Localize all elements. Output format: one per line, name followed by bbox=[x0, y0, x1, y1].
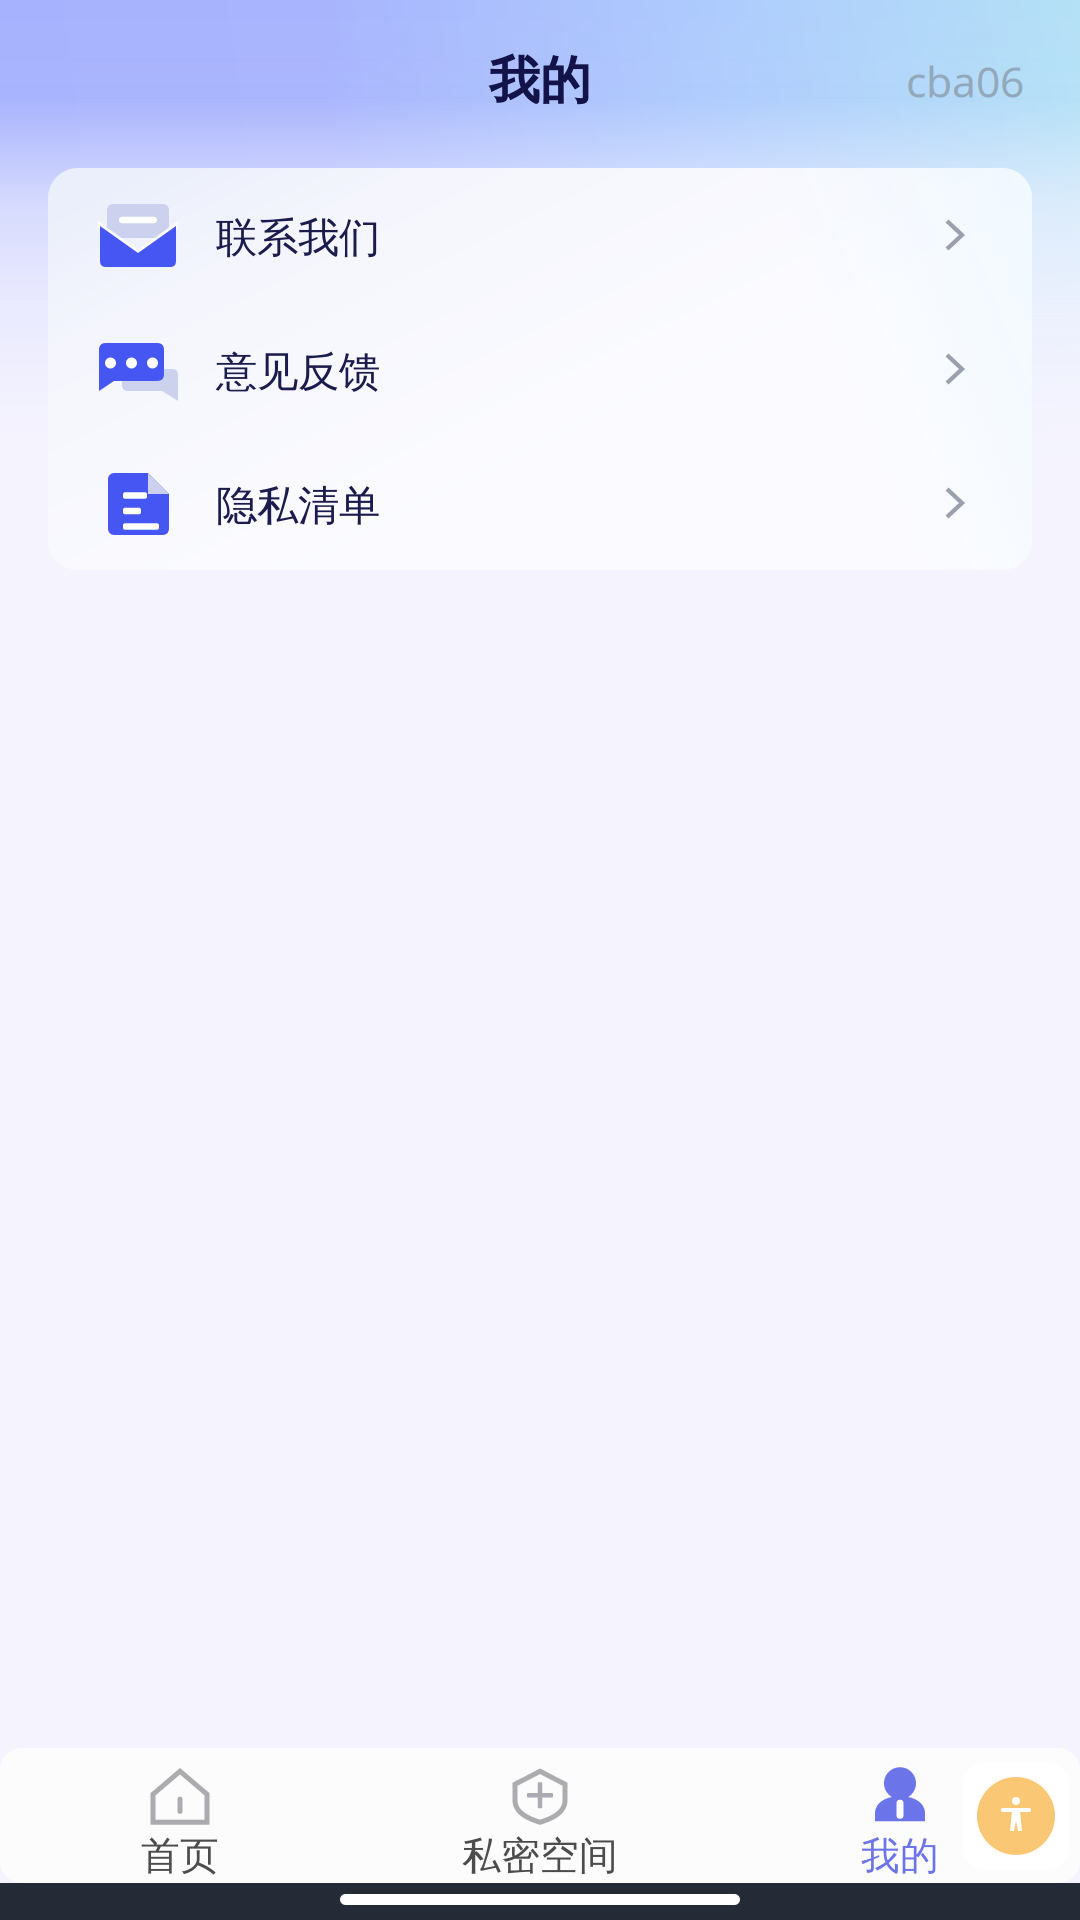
button[interactable]: 我的 bbox=[720, 1748, 1080, 1883]
button[interactable]: Accessibility bbox=[962, 1762, 1070, 1870]
staticText: 我的 bbox=[489, 50, 591, 112]
staticText: cba06 bbox=[906, 53, 1024, 109]
button[interactable]: 意见反馈 bbox=[48, 302, 1032, 436]
button[interactable]: 联系我们 bbox=[48, 168, 1032, 302]
staticText: 我的 bbox=[861, 1832, 939, 1880]
button[interactable]: 私密空间 bbox=[360, 1748, 720, 1883]
staticText: 联系我们 bbox=[216, 213, 380, 263]
button[interactable]: 首页 bbox=[0, 1748, 360, 1883]
staticText: 首页 bbox=[141, 1832, 219, 1880]
staticText: 意见反馈 bbox=[216, 347, 380, 397]
button[interactable]: 隐私清单 bbox=[48, 436, 1032, 570]
staticText: 隐私清单 bbox=[216, 481, 380, 531]
staticText: 私密空间 bbox=[462, 1832, 618, 1880]
